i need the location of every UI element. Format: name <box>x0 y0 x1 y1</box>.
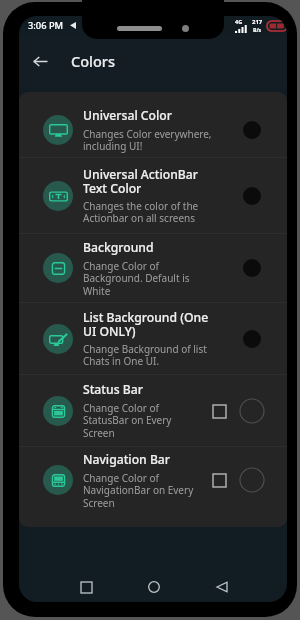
button[interactable]: Pick color <box>238 466 266 494</box>
button[interactable]: Status Bar <box>19 375 287 446</box>
button[interactable]: Universal ActionBar Text Color <box>19 158 287 233</box>
button[interactable]: Pick color <box>238 182 266 210</box>
button[interactable]: Background <box>19 234 287 302</box>
staticText: Change Color of Background. Default is W… <box>83 259 217 298</box>
button[interactable]: Navigate up <box>23 44 57 78</box>
button[interactable]: Pick color <box>238 254 266 282</box>
button[interactable]: Enable <box>208 400 230 422</box>
button[interactable]: List Background (One UI ONLY) <box>19 303 287 374</box>
button[interactable]: Pick color <box>238 397 266 425</box>
staticText: Navigation Bar <box>83 451 170 468</box>
staticText: 3:06 PM <box>28 19 64 32</box>
staticText: Change Color of NavigationBar on Every S… <box>83 471 205 510</box>
staticText: List Background (One UI ONLY) <box>83 309 217 339</box>
staticText: Changes the color of the Actionbar on al… <box>83 199 217 225</box>
button[interactable]: Recents <box>71 572 101 602</box>
button[interactable]: Home <box>139 572 169 602</box>
button[interactable]: Pick color <box>238 116 266 144</box>
staticText: Colors <box>71 51 116 71</box>
staticText: 4G <box>235 18 243 25</box>
staticText: Status Bar <box>83 381 143 398</box>
button[interactable]: Pick color <box>238 325 266 353</box>
staticText: Universal ActionBar Text Color <box>83 166 217 196</box>
button[interactable]: Enable <box>208 469 230 491</box>
button[interactable]: Universal Color <box>19 102 287 157</box>
button[interactable]: Back <box>207 572 237 602</box>
staticText: Change Color of StatusBar on Every Scree… <box>83 401 205 440</box>
staticText: Background <box>83 239 154 256</box>
button[interactable]: Navigation Bar <box>19 447 287 513</box>
staticText: Changes Color everywhere, including UI! <box>83 127 217 153</box>
staticText: Change Background of list Chats in One U… <box>83 342 217 368</box>
staticText: Universal Color <box>83 107 172 124</box>
staticText: 217 <box>252 18 263 26</box>
staticText: B/s <box>253 26 262 33</box>
